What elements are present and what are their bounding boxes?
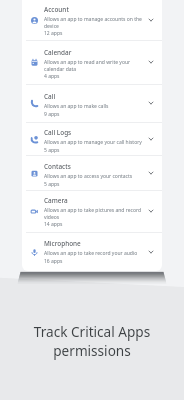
staticText: Allows an app to read and write your cal… [44,59,143,72]
staticText: Call [44,92,56,101]
staticText: Allows an app to manage your call histor… [44,139,142,146]
staticText: Call Logs [44,128,72,137]
staticText: 14 apps [44,221,63,228]
staticText: Allows an app to make calls [44,103,109,110]
staticText: Camera [44,196,68,205]
button[interactable]: Expand Calendar [146,57,156,67]
staticText: 16 apps [44,258,63,265]
button[interactable]: Expand Camera [146,206,156,216]
button[interactable] [22,84,162,122]
button[interactable] [22,122,162,155]
staticText: Contacts [44,162,71,171]
staticText: 12 apps [44,30,63,37]
staticText: Allows an app to take pictures and recor… [44,207,143,220]
staticText: Allows an app to take record your audio [44,250,138,257]
button[interactable]: Expand Account [146,15,156,25]
button[interactable]: Expand Microphone [146,247,156,257]
button[interactable]: Expand Contacts [146,168,156,178]
staticText: 9 apps [44,111,60,118]
staticText: Allows an app to access your contacts [44,173,133,180]
button[interactable] [22,0,162,40]
staticText: Account [44,5,69,14]
button[interactable] [22,190,162,232]
staticText: Microphone [44,239,81,248]
button[interactable]: Expand Call [146,98,156,108]
staticText: 4 apps [44,73,60,80]
button[interactable] [22,232,162,271]
staticText: 5 apps [44,181,60,188]
staticText: Calendar [44,48,72,57]
staticText: Allows an app to manage accounts on the … [44,16,143,29]
button[interactable] [22,155,162,190]
staticText: 5 apps [44,147,60,154]
staticText: Track Critical Apps permissions [0,322,184,360]
button[interactable]: Expand Call Logs [146,134,156,144]
button[interactable] [22,40,162,84]
